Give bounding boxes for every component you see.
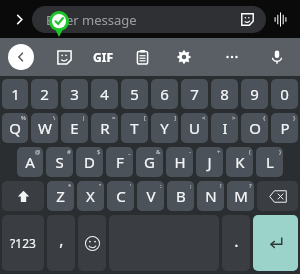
- button[interactable]: 9: [241, 79, 268, 109]
- button[interactable]: R: [91, 113, 118, 143]
- button[interactable]: Voice input: [264, 44, 290, 70]
- staticText: @: [35, 148, 41, 156]
- button[interactable]: 4: [91, 79, 118, 109]
- staticText: N: [205, 186, 217, 206]
- button[interactable]: Back: [8, 44, 34, 70]
- staticText: R: [100, 118, 110, 138]
- staticText: ]: [174, 114, 176, 122]
- staticText: &: [156, 148, 161, 156]
- button[interactable]: W: [31, 113, 58, 143]
- staticText: L: [266, 152, 274, 172]
- button[interactable]: ?123: [2, 215, 44, 271]
- staticText: B: [176, 186, 186, 206]
- staticText: K: [235, 152, 245, 172]
- button[interactable]: N: [197, 181, 224, 211]
- staticText: T: [130, 118, 139, 138]
- button[interactable]: Shift: [2, 181, 44, 211]
- staticText: }: [293, 114, 296, 122]
- staticText: 1: [11, 84, 20, 104]
- button[interactable]: A: [17, 147, 43, 177]
- button[interactable]: Clipboard: [129, 44, 155, 70]
- staticText: 6: [160, 84, 169, 104]
- button[interactable]: Z: [47, 181, 74, 211]
- button[interactable]: GIF: [93, 44, 113, 70]
- button[interactable]: Enter message: [32, 6, 266, 33]
- button[interactable]: 6: [151, 79, 178, 109]
- button[interactable]: I: [211, 113, 238, 143]
- button[interactable]: P: [271, 113, 298, 143]
- staticText: !: [220, 182, 222, 190]
- button[interactable]: D: [76, 147, 103, 177]
- button[interactable]: G: [136, 147, 163, 177]
- staticText: 0: [280, 84, 289, 104]
- button[interactable]: 2: [31, 79, 58, 109]
- staticText: X: [86, 186, 95, 206]
- button[interactable]: O: [241, 113, 268, 143]
- staticText: |: [82, 114, 86, 122]
- button[interactable]: M: [227, 181, 254, 211]
- button[interactable]: Y: [151, 113, 178, 143]
- staticText: G: [144, 152, 155, 172]
- button[interactable]: L: [256, 147, 283, 177]
- button[interactable]: 0: [271, 79, 298, 109]
- button[interactable]: 3: [61, 79, 88, 109]
- staticText: A: [25, 152, 35, 172]
- staticText: <: [202, 114, 206, 122]
- staticText: J: [207, 152, 212, 172]
- staticText: ): [279, 148, 281, 156]
- button[interactable]: Q: [2, 113, 28, 143]
- staticText: \: [53, 114, 56, 122]
- button[interactable]: Audio: [266, 5, 294, 33]
- button[interactable]: X: [77, 181, 104, 211]
- staticText: 5: [130, 84, 139, 104]
- staticText: ?: [249, 182, 252, 190]
- staticText: Z: [56, 186, 65, 206]
- button[interactable]: V: [137, 181, 164, 211]
- staticText: W: [38, 118, 52, 138]
- staticText: M: [234, 186, 248, 206]
- button[interactable]: 5: [121, 79, 148, 109]
- button[interactable]: 1: [2, 79, 28, 109]
- staticText: Q: [9, 118, 21, 138]
- button[interactable]: S: [46, 147, 73, 177]
- button[interactable]: J: [196, 147, 223, 177]
- staticText: *: [68, 182, 72, 190]
- staticText: P: [280, 118, 290, 138]
- staticText: >: [232, 114, 236, 122]
- staticText: ;: [190, 182, 192, 190]
- staticText: 3: [70, 84, 79, 104]
- staticText: S: [55, 152, 64, 172]
- button[interactable]: H: [166, 147, 193, 177]
- staticText: U: [189, 118, 200, 138]
- button[interactable]: E: [61, 113, 88, 143]
- button[interactable]: Backspace: [257, 181, 298, 211]
- button[interactable]: Settings: [171, 44, 197, 70]
- staticText: ?123: [10, 235, 36, 251]
- button[interactable]: .: [222, 215, 250, 271]
- button[interactable]: Emoji: [78, 215, 106, 271]
- staticText: ,: [59, 229, 64, 251]
- staticText: O: [249, 118, 261, 138]
- button[interactable]: Expand: [6, 6, 32, 32]
- staticText: V: [146, 186, 156, 206]
- button[interactable]: T: [121, 113, 148, 143]
- button[interactable]: More options: [219, 44, 245, 70]
- button[interactable]: ,: [47, 215, 75, 271]
- staticText: I: [222, 118, 228, 138]
- staticText: E: [70, 118, 79, 138]
- staticText: ': [130, 182, 132, 190]
- staticText: 9: [250, 84, 259, 104]
- button[interactable]: 7: [181, 79, 208, 109]
- button[interactable]: F: [106, 147, 133, 177]
- staticText: %: [21, 114, 26, 122]
- button[interactable]: 8: [211, 79, 238, 109]
- staticText: +: [217, 148, 221, 156]
- button[interactable]: B: [167, 181, 194, 211]
- button[interactable]: U: [181, 113, 208, 143]
- staticText: (: [249, 148, 251, 156]
- button[interactable]: Stickers: [51, 44, 77, 70]
- button[interactable]: Enter: [253, 215, 298, 271]
- button[interactable]: C: [107, 181, 134, 211]
- button[interactable]: K: [226, 147, 253, 177]
